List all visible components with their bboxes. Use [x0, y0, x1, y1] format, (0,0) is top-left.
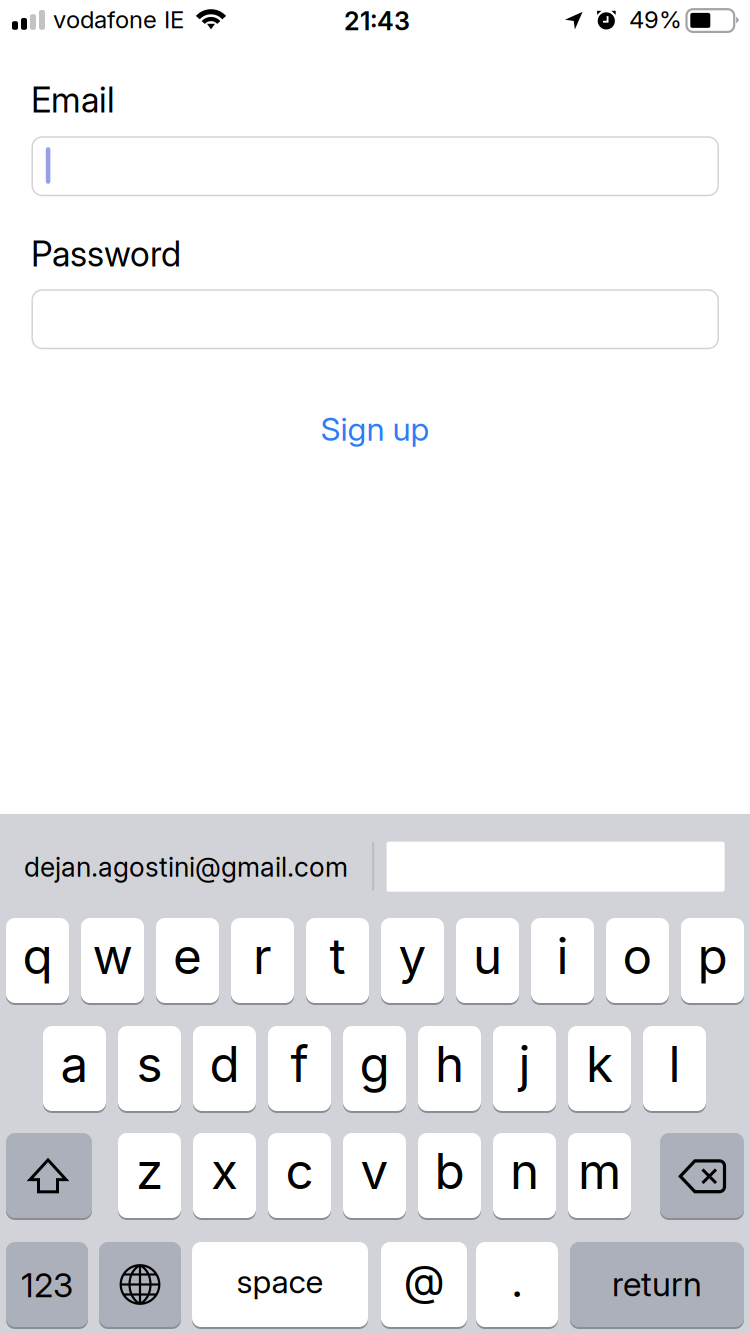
staticText: 123: [21, 1265, 73, 1305]
staticText: o: [622, 926, 652, 986]
button[interactable]: v: [343, 1133, 406, 1218]
staticText: r: [253, 926, 272, 986]
staticText: Sign up: [320, 410, 429, 448]
button[interactable]: r: [231, 918, 294, 1003]
staticText: Password: [31, 233, 181, 275]
staticText: 21:43: [344, 6, 410, 36]
button[interactable]: Delete: [660, 1133, 744, 1218]
button[interactable]: i: [531, 918, 594, 1003]
button[interactable]: c: [268, 1133, 331, 1218]
staticText: space: [236, 1262, 323, 1301]
button[interactable]: p: [681, 918, 744, 1003]
staticText: t: [329, 926, 345, 986]
button[interactable]: space: [192, 1242, 368, 1327]
button[interactable]: m: [568, 1133, 631, 1218]
staticText: Email: [31, 79, 115, 121]
staticText: dejan.agostini@gmail.com: [24, 851, 348, 883]
button[interactable]: return: [570, 1242, 744, 1327]
staticText: 49%: [629, 5, 682, 34]
staticText: f: [290, 1034, 308, 1094]
button[interactable]: f: [268, 1026, 331, 1111]
button[interactable]: q: [6, 918, 69, 1003]
button[interactable]: 123: [6, 1242, 88, 1327]
button[interactable]: k: [568, 1026, 631, 1111]
staticText: s: [136, 1034, 162, 1094]
button[interactable]: g: [343, 1026, 406, 1111]
button[interactable]: b: [418, 1133, 481, 1218]
staticText: .: [511, 1256, 523, 1307]
staticText: m: [578, 1141, 621, 1201]
staticText: b: [434, 1141, 464, 1201]
button[interactable]: .: [476, 1242, 558, 1327]
staticText: vodafone IE: [53, 5, 184, 34]
button[interactable]: t: [306, 918, 369, 1003]
staticText: v: [360, 1141, 388, 1201]
button[interactable]: l: [643, 1026, 706, 1111]
staticText: return: [612, 1264, 702, 1304]
staticText: q: [22, 926, 52, 986]
button[interactable]: Next keyboard: [99, 1242, 181, 1327]
button[interactable]: y: [381, 918, 444, 1003]
staticText: n: [510, 1141, 539, 1201]
staticText: p: [697, 926, 727, 986]
button[interactable]: Sign up: [32, 403, 718, 455]
staticText: l: [668, 1034, 680, 1094]
staticText: w: [92, 926, 132, 986]
staticText: i: [556, 926, 568, 986]
staticText: k: [586, 1034, 613, 1094]
button[interactable]: [32, 290, 718, 348]
button[interactable]: @: [381, 1242, 467, 1327]
staticText: a: [60, 1034, 88, 1094]
button[interactable]: n: [493, 1133, 556, 1218]
staticText: d: [209, 1034, 239, 1094]
staticText: c: [285, 1141, 313, 1201]
button[interactable]: j: [493, 1026, 556, 1111]
staticText: g: [359, 1034, 389, 1094]
staticText: u: [473, 926, 502, 986]
staticText: z: [136, 1141, 163, 1201]
staticText: y: [398, 926, 426, 986]
staticText: @: [403, 1255, 444, 1306]
button[interactable]: w: [81, 918, 144, 1003]
button[interactable]: d: [193, 1026, 256, 1111]
button[interactable]: h: [418, 1026, 481, 1111]
button[interactable]: s: [118, 1026, 181, 1111]
button[interactable]: Shift: [6, 1133, 92, 1218]
button[interactable]: u: [456, 918, 519, 1003]
button[interactable]: o: [606, 918, 669, 1003]
button[interactable]: [32, 137, 718, 195]
button[interactable]: dejan.agostini@gmail.com: [24, 840, 364, 894]
staticText: e: [173, 926, 202, 986]
button[interactable]: e: [156, 918, 219, 1003]
button[interactable]: a: [43, 1026, 106, 1111]
button[interactable]: z: [118, 1133, 181, 1218]
staticText: x: [211, 1141, 238, 1201]
button[interactable]: x: [193, 1133, 256, 1218]
staticText: h: [435, 1034, 464, 1094]
staticText: j: [518, 1034, 530, 1094]
